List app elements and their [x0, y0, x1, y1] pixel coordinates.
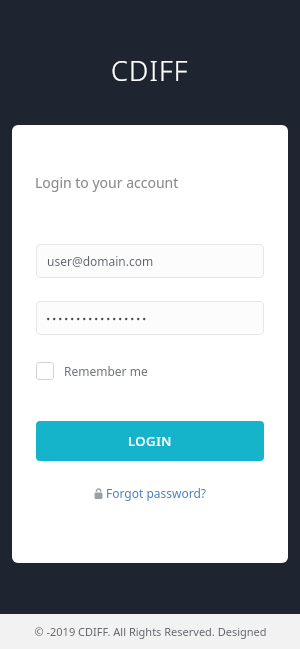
- staticText: Forgot password?: [106, 485, 207, 501]
- button[interactable]: Locked: [90, 483, 211, 503]
- button[interactable]: LOGIN: [36, 421, 264, 461]
- staticText: LOGIN: [128, 432, 173, 450]
- staticText: © -2019 CDIFF. All Rights Reserved. Desi…: [34, 624, 267, 639]
- staticText: Remember me: [64, 363, 148, 379]
- staticText: CDIFF: [111, 52, 189, 89]
- button[interactable]: user@domain.com: [36, 244, 264, 278]
- staticText: Login to your account: [35, 173, 179, 192]
- staticText: user@domain.com: [47, 253, 154, 269]
- other: Locked: [94, 488, 103, 499]
- button[interactable]: Remember me: [36, 362, 148, 380]
- button[interactable]: [36, 301, 264, 335]
